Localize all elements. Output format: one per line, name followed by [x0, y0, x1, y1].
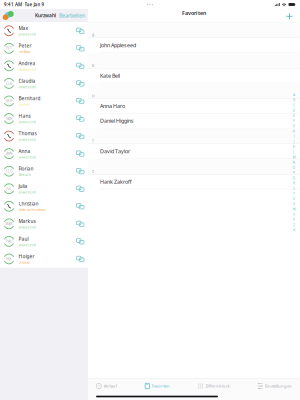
staticText: MAR [5, 222, 12, 226]
staticText: Daniel Higgins [100, 117, 134, 124]
staticText: H [292, 129, 295, 133]
button[interactable]: FLO [0, 162, 88, 180]
staticText: Ziffernblock [205, 383, 229, 389]
staticText: Einstellungen [265, 383, 292, 389]
staticText: FLO [6, 169, 12, 173]
staticText: Urlaub [18, 260, 29, 265]
staticText: Hank Zakroff [100, 178, 132, 185]
staticText: B [92, 63, 94, 68]
staticText: anwesend [18, 84, 35, 89]
staticText: C [293, 103, 295, 107]
staticText: H [92, 94, 95, 98]
button[interactable]: Add favourite [284, 11, 294, 21]
staticText: B [293, 98, 295, 102]
staticText: K [293, 144, 295, 149]
staticText: A [92, 33, 94, 38]
staticText: Florian [18, 165, 33, 172]
button[interactable]: Christian [0, 197, 88, 215]
staticText: Bearbeiten [59, 12, 85, 19]
staticText: BER [6, 99, 12, 103]
button[interactable]: David Taylor [88, 144, 300, 159]
staticText: anwesend [18, 190, 35, 194]
button[interactable]: Favoriten [144, 380, 170, 392]
button[interactable]: JUL [0, 180, 88, 198]
staticText: Verlauf [104, 383, 117, 389]
staticText: Besuch [18, 172, 30, 177]
staticText: anwesend [18, 119, 35, 124]
staticText: R [293, 181, 295, 185]
staticText: Markus [18, 218, 35, 224]
staticText: HOL [6, 257, 12, 261]
button[interactable]: Anna Haro [88, 99, 300, 114]
staticText: Peter [18, 42, 31, 49]
staticText: CLA [6, 81, 12, 85]
staticText: Thomas [18, 130, 36, 137]
staticText: 9:41 AM [4, 2, 22, 7]
staticText: bitte nicht stören [18, 207, 45, 212]
button[interactable]: CLA [0, 75, 88, 92]
staticText: Julia [18, 183, 27, 189]
staticText: Kate Bell [100, 72, 120, 79]
staticText: Christian [18, 200, 38, 207]
staticText: Z [92, 169, 94, 174]
button[interactable]: Verlauf [96, 380, 117, 392]
staticText: E [293, 113, 295, 118]
staticText: Y [293, 217, 295, 222]
staticText: P [293, 170, 295, 175]
button[interactable]: Thomas [0, 127, 88, 145]
button[interactable]: Max [0, 22, 88, 40]
button[interactable]: MAR [0, 215, 88, 233]
staticText: Tue Jan 9 [25, 2, 45, 7]
staticText: anwesend [18, 155, 35, 159]
button[interactable]: HAN [0, 110, 88, 127]
staticText: David Taylor [100, 148, 130, 155]
button[interactable]: PAU [0, 233, 88, 250]
button[interactable]: Hank Zakroff [88, 174, 300, 189]
staticText: N [292, 160, 295, 165]
staticText: Paul [18, 236, 28, 242]
staticText: Termin [18, 102, 29, 107]
staticText: # [293, 228, 295, 232]
staticText: anwesend [18, 137, 35, 142]
staticText: Anna Haro [100, 102, 125, 110]
button[interactable]: Andrea [0, 57, 88, 75]
button[interactable]: Ziffernblock [198, 380, 229, 392]
button[interactable]: HOL [0, 250, 88, 268]
button[interactable]: John Appleseed [88, 38, 300, 53]
button[interactable]: Einstellungen [257, 380, 292, 392]
staticText: Anna [18, 148, 30, 154]
staticText: Q [292, 176, 295, 180]
staticText: A [293, 92, 295, 97]
staticText: D [292, 108, 295, 113]
button[interactable]: PET [0, 39, 88, 57]
staticText: U [292, 196, 295, 201]
staticText: PAU [6, 239, 12, 243]
staticText: T [293, 191, 295, 196]
staticText: W [292, 207, 295, 211]
staticText: Claudia [18, 78, 35, 84]
button[interactable]: Daniel Higgins [88, 114, 300, 128]
staticText: John Appleseed [100, 42, 136, 49]
staticText: im Büro [18, 49, 30, 54]
staticText: anwesend [18, 32, 35, 37]
staticText: L [293, 150, 295, 154]
staticText: Bernhard [18, 95, 40, 102]
button[interactable]: ANN [0, 145, 88, 162]
staticText: JUL [6, 187, 11, 191]
button[interactable]: BER [0, 92, 88, 110]
staticText: T [92, 139, 94, 144]
staticText: G [292, 124, 295, 128]
staticText: Favoriten [152, 383, 170, 389]
staticText: Holger [18, 253, 34, 259]
staticText: HAN [6, 116, 12, 121]
button[interactable]: Kate Bell [88, 68, 300, 83]
staticText: Andrea [18, 60, 35, 66]
button[interactable]: Bearbeiten [59, 12, 85, 19]
staticText: M [292, 155, 295, 159]
staticText: X [293, 212, 295, 217]
staticText: Max [18, 25, 28, 31]
staticText: V [293, 202, 295, 206]
staticText: Hans [18, 113, 30, 119]
staticText: anwesend [18, 242, 35, 247]
staticText: Favoriten [182, 9, 206, 16]
